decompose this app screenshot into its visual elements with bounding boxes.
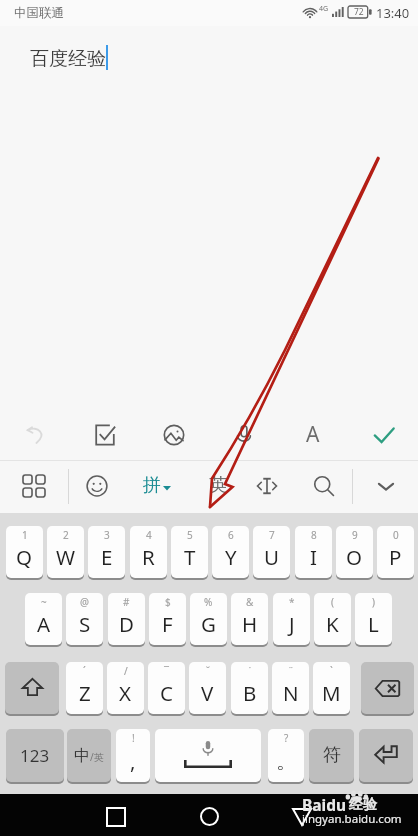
- staticText: jingyan.baidu.com: [302, 811, 402, 827]
- staticText: B: [243, 679, 257, 707]
- staticText: R: [142, 543, 155, 571]
- button[interactable]: Hide keyboard: [364, 461, 408, 510]
- staticText: W: [56, 543, 76, 571]
- button[interactable]: `: [313, 662, 350, 714]
- staticText: 9: [352, 528, 358, 542]
- staticText: I: [310, 543, 317, 571]
- button[interactable]: Keyboard layout: [12, 461, 56, 510]
- button[interactable]: Chinese English toggle: [67, 729, 111, 782]
- staticText: $: [165, 595, 171, 609]
- staticText: /: [124, 664, 128, 678]
- button[interactable]: /: [107, 662, 144, 714]
- button[interactable]: Select all: [83, 409, 127, 460]
- button[interactable]: 拼: [134, 461, 180, 510]
- staticText: ´: [83, 664, 86, 678]
- staticText: Z: [79, 679, 91, 707]
- staticText: ,: [130, 747, 136, 775]
- staticText: 符: [323, 744, 341, 767]
- button[interactable]: Emoji: [75, 461, 119, 510]
- button[interactable]: 9: [336, 526, 373, 578]
- button[interactable]: ˘: [189, 662, 226, 714]
- button[interactable]: 5: [171, 526, 208, 578]
- button[interactable]: *: [273, 593, 310, 645]
- staticText: *: [289, 595, 295, 609]
- button[interactable]: $: [149, 593, 186, 645]
- button[interactable]: Voice input: [222, 409, 266, 460]
- staticText: Baidu: [302, 794, 347, 815]
- button[interactable]: 英: [196, 461, 240, 510]
- button[interactable]: &: [231, 593, 268, 645]
- staticText: ): [372, 595, 375, 609]
- button[interactable]: Text style: [291, 409, 335, 460]
- button[interactable]: Recents: [98, 794, 134, 836]
- staticText: 英: [209, 474, 227, 497]
- staticText: #: [123, 595, 130, 609]
- staticText: 0: [393, 528, 399, 542]
- staticText: E: [101, 543, 113, 571]
- button[interactable]: ?: [268, 729, 304, 782]
- staticText: 4G: [319, 4, 329, 14]
- button[interactable]: 7: [253, 526, 290, 578]
- button[interactable]: Move cursor: [245, 461, 289, 510]
- button[interactable]: 8: [295, 526, 332, 578]
- staticText: 1: [22, 528, 28, 542]
- staticText: K: [326, 610, 339, 638]
- button[interactable]: 6: [212, 526, 249, 578]
- button[interactable]: Insert image: [152, 409, 196, 460]
- button[interactable]: Backspace: [361, 662, 414, 714]
- staticText: 8: [311, 528, 317, 542]
- staticText: !: [132, 731, 135, 745]
- button[interactable]: 4: [130, 526, 167, 578]
- button[interactable]: 1: [6, 526, 43, 578]
- button[interactable]: ~: [25, 593, 62, 645]
- button[interactable]: Home: [191, 794, 227, 836]
- button[interactable]: %: [190, 593, 227, 645]
- staticText: (: [331, 595, 334, 609]
- staticText: 6: [228, 528, 234, 542]
- staticText: J: [289, 610, 295, 638]
- staticText: O: [346, 543, 363, 571]
- button[interactable]: ´: [66, 662, 103, 714]
- staticText: D: [119, 610, 134, 638]
- staticText: ~: [41, 595, 47, 609]
- staticText: A: [37, 610, 51, 638]
- button[interactable]: 3: [88, 526, 125, 578]
- staticText: `: [330, 664, 333, 678]
- staticText: @: [80, 595, 89, 609]
- staticText: Q: [16, 543, 33, 571]
- button[interactable]: @: [66, 593, 103, 645]
- button[interactable]: Search: [302, 461, 346, 510]
- staticText: 123: [20, 744, 50, 767]
- staticText: 5: [187, 528, 193, 542]
- button[interactable]: Done: [362, 409, 406, 460]
- staticText: ˙: [249, 664, 251, 678]
- staticText: 72: [354, 6, 364, 18]
- staticText: %: [204, 595, 213, 609]
- button[interactable]: 2: [47, 526, 84, 578]
- staticText: 3: [104, 528, 110, 542]
- staticText: C: [160, 679, 173, 707]
- staticText: H: [242, 610, 258, 638]
- staticText: 。: [276, 748, 297, 774]
- button[interactable]: !: [116, 729, 150, 782]
- button[interactable]: #: [108, 593, 145, 645]
- staticText: 中国联通: [14, 5, 64, 21]
- button[interactable]: 0: [377, 526, 414, 578]
- button[interactable]: 123: [6, 729, 64, 782]
- staticText: ˘: [206, 664, 210, 678]
- button[interactable]: (: [314, 593, 351, 645]
- button[interactable]: 符: [309, 729, 354, 782]
- button[interactable]: ): [355, 593, 392, 645]
- staticText: U: [264, 543, 279, 571]
- button[interactable]: Shift: [5, 662, 59, 714]
- button[interactable]: Space: [155, 729, 261, 782]
- button[interactable]: Enter: [359, 729, 413, 782]
- button[interactable]: ˙: [231, 662, 268, 714]
- button[interactable]: ¨: [272, 662, 309, 714]
- button[interactable]: Back: [284, 794, 320, 836]
- staticText: &: [246, 595, 254, 609]
- button[interactable]: Undo: [14, 409, 58, 460]
- staticText: ¯: [164, 664, 169, 678]
- staticText: N: [283, 679, 299, 707]
- button[interactable]: ¯: [148, 662, 185, 714]
